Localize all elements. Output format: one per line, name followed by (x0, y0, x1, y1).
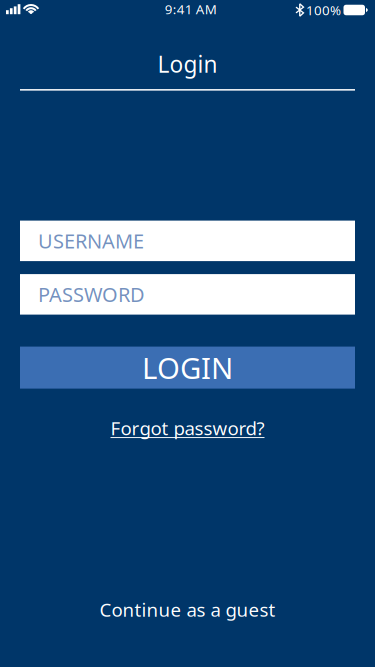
button[interactable]: Forgot password? (110, 416, 264, 440)
staticText: 9:41 AM (165, 0, 217, 18)
staticText: Continue as a guest (99, 597, 275, 622)
button[interactable]: PASSWORD (0, 274, 375, 315)
staticText: LOGIN (142, 348, 233, 387)
staticText: Forgot password? (110, 416, 264, 440)
staticText: PASSWORD (38, 281, 145, 308)
button[interactable]: USERNAME (0, 221, 375, 261)
button[interactable]: LOGIN (0, 347, 375, 389)
staticText: 100% (306, 1, 341, 19)
button[interactable]: Continue as a guest (99, 597, 275, 622)
staticText: USERNAME (38, 228, 144, 254)
staticText: Login (157, 49, 217, 79)
